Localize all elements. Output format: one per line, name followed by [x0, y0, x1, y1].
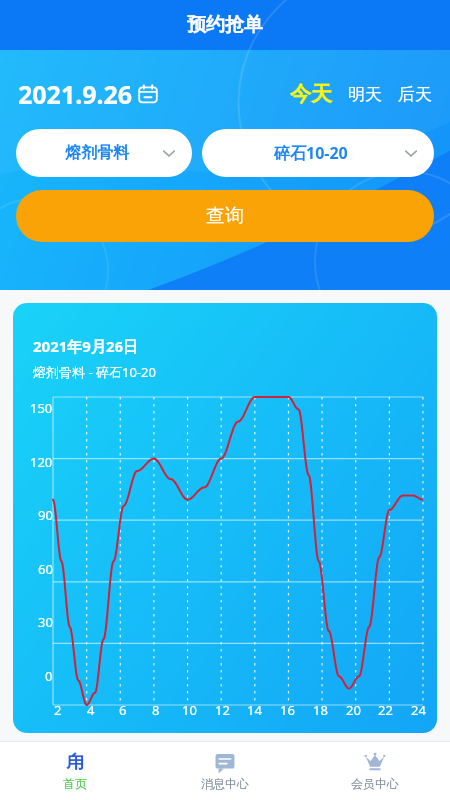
- button[interactable]: Messages: [150, 742, 300, 800]
- staticText: 明天: [348, 84, 382, 105]
- button[interactable]: Member center: [300, 742, 450, 800]
- button[interactable]: 明天: [348, 84, 382, 105]
- button[interactable]: Home: [0, 742, 150, 800]
- staticText: 2021年9月26日: [33, 336, 139, 356]
- staticText: 90: [38, 506, 53, 524]
- staticText: 2: [54, 701, 62, 719]
- other: Pick date: [137, 83, 159, 105]
- staticText: 今天: [290, 81, 332, 107]
- staticText: 后天: [398, 84, 432, 105]
- staticText: 首页: [63, 776, 87, 791]
- staticText: 12: [215, 701, 230, 719]
- button[interactable]: 后天: [398, 84, 432, 105]
- staticText: 消息中心: [201, 776, 249, 791]
- staticText: 20: [346, 701, 361, 719]
- staticText: 预约抢单: [187, 13, 263, 37]
- staticText: 60: [38, 560, 53, 578]
- other: Member center: [364, 751, 386, 773]
- staticText: 10: [182, 701, 197, 719]
- button[interactable]: 2021年9月26日: [13, 303, 437, 733]
- other: Messages: [214, 751, 236, 773]
- staticText: 22: [378, 701, 393, 719]
- button[interactable]: 碎石10-20: [202, 129, 434, 177]
- staticText: 甪: [66, 751, 84, 773]
- staticText: 18: [313, 701, 328, 719]
- button[interactable]: 熔剂骨料: [16, 129, 192, 177]
- staticText: 8: [152, 701, 160, 719]
- staticText: 会员中心: [351, 776, 399, 791]
- staticText: 120: [30, 453, 53, 471]
- staticText: 24: [411, 701, 426, 719]
- staticText: 碎石10-20: [274, 142, 348, 164]
- staticText: 16: [280, 701, 295, 719]
- staticText: 0: [45, 667, 53, 685]
- staticText: 熔剂骨料 - 碎石10-20: [33, 363, 156, 381]
- button[interactable]: 查询: [16, 190, 434, 242]
- staticText: 30: [38, 613, 53, 631]
- button[interactable]: 2021.9.26: [18, 77, 159, 111]
- staticText: 4: [87, 701, 95, 719]
- staticText: 查询: [206, 204, 244, 228]
- other: Home: [64, 751, 86, 773]
- staticText: 6: [119, 701, 127, 719]
- staticText: 2021.9.26: [18, 77, 133, 111]
- staticText: 熔剂骨料: [65, 143, 129, 163]
- staticText: 150: [30, 399, 53, 417]
- button[interactable]: 今天: [290, 81, 332, 107]
- staticText: 14: [247, 701, 262, 719]
